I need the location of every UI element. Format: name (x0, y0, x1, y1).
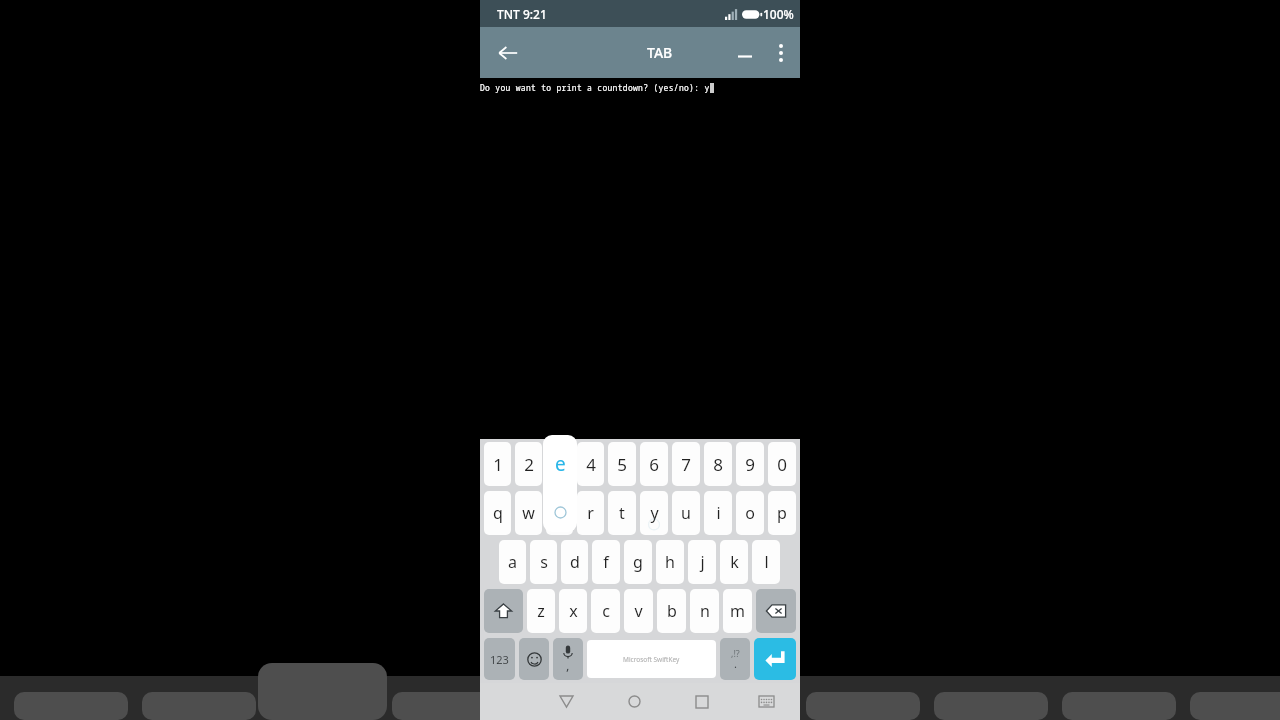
staticText: o (745, 502, 755, 524)
button[interactable]: z (527, 589, 555, 633)
button[interactable]: 2 (515, 442, 542, 486)
button[interactable]: t (608, 491, 636, 535)
button[interactable]: j (688, 540, 716, 584)
button[interactable]: y (640, 491, 668, 535)
staticText: s (540, 551, 548, 573)
staticText: 4 (586, 453, 596, 476)
staticText: ,!? (731, 647, 740, 659)
button[interactable]: 5 (608, 442, 636, 486)
staticText: e (555, 451, 566, 477)
staticText: 7 (681, 453, 691, 476)
staticText: 1 (493, 453, 503, 476)
button[interactable]: n (690, 589, 719, 633)
button[interactable]: Key (756, 589, 796, 633)
button[interactable]: l (752, 540, 780, 584)
staticText: , (566, 656, 570, 674)
staticText: n (700, 600, 710, 622)
staticText: g (633, 551, 643, 573)
button[interactable]: 7 (672, 442, 700, 486)
button[interactable]: 0 (768, 442, 796, 486)
button[interactable]: w (515, 491, 542, 535)
staticText: Do you want to print a countdown? (yes/n… (480, 82, 710, 93)
staticText: r (587, 502, 594, 524)
staticText: z (537, 600, 545, 622)
staticText: 3 (555, 453, 565, 476)
button[interactable]: Space (587, 640, 716, 678)
staticText: h (665, 551, 675, 573)
button[interactable]: i (704, 491, 732, 535)
button[interactable]: x (559, 589, 587, 633)
staticText: l (764, 551, 769, 573)
staticText: j (700, 551, 705, 573)
staticText: p (777, 502, 787, 524)
staticText: 0 (777, 453, 787, 476)
staticText: Microsoft SwiftKey (623, 655, 680, 664)
button[interactable]: k (720, 540, 748, 584)
button[interactable]: c (591, 589, 620, 633)
button[interactable]: f (592, 540, 620, 584)
button[interactable]: Key (519, 638, 549, 680)
button[interactable]: Home (614, 683, 654, 720)
button[interactable]: Recents (682, 683, 722, 720)
button[interactable]: s (530, 540, 557, 584)
button[interactable]: e (546, 491, 573, 535)
staticText: b (667, 600, 677, 622)
staticText: 100% (763, 6, 794, 22)
staticText: 6 (649, 453, 659, 476)
staticText: w (522, 502, 535, 524)
button[interactable]: Back (488, 33, 528, 73)
staticText: 123 (490, 652, 509, 667)
button[interactable]: r (577, 491, 604, 535)
button[interactable]: o (736, 491, 764, 535)
staticText: 5 (617, 453, 627, 476)
staticText: 2 (524, 453, 534, 476)
button[interactable]: d (561, 540, 588, 584)
button[interactable]: 6 (640, 442, 668, 486)
staticText: i (716, 502, 721, 524)
button[interactable]: 4 (577, 442, 604, 486)
staticText: TNT 9:21 (497, 6, 547, 22)
button[interactable]: b (657, 589, 686, 633)
staticText: f (603, 551, 609, 573)
staticText: m (730, 600, 745, 622)
button[interactable]: Enter (754, 638, 796, 680)
button[interactable]: 8 (704, 442, 732, 486)
button[interactable]: 1 (484, 442, 511, 486)
button[interactable]: 9 (736, 442, 764, 486)
button[interactable]: Key (484, 589, 523, 633)
button[interactable]: e key preview (543, 435, 577, 532)
button[interactable]: More options (762, 34, 800, 72)
staticText: c (602, 600, 610, 622)
staticText: 9 (745, 453, 755, 476)
staticText: e (555, 502, 565, 524)
staticText: a (508, 551, 517, 573)
staticText: x (569, 600, 578, 622)
staticText: q (493, 502, 503, 524)
staticText: v (634, 600, 643, 622)
staticText: d (570, 551, 580, 573)
button[interactable]: a (499, 540, 526, 584)
button[interactable]: Key (553, 638, 583, 680)
button[interactable]: m (723, 589, 752, 633)
staticText: . (734, 656, 737, 671)
button[interactable]: g (624, 540, 652, 584)
staticText: TAB (647, 43, 673, 62)
button[interactable]: v (624, 589, 653, 633)
staticText: k (730, 551, 739, 573)
button[interactable]: Minimize (728, 36, 762, 70)
button[interactable]: h (656, 540, 684, 584)
button[interactable]: Key (720, 638, 750, 680)
button[interactable]: p (768, 491, 796, 535)
button[interactable]: Key (484, 638, 515, 680)
button[interactable]: Back (546, 683, 586, 720)
button[interactable]: Switch keyboard (746, 683, 786, 720)
button[interactable]: q (484, 491, 511, 535)
staticText: u (681, 502, 691, 524)
staticText: 8 (713, 453, 723, 476)
button[interactable]: u (672, 491, 700, 535)
button[interactable]: 3 (546, 442, 573, 486)
staticText: t (619, 502, 625, 524)
staticText: y (650, 502, 659, 524)
